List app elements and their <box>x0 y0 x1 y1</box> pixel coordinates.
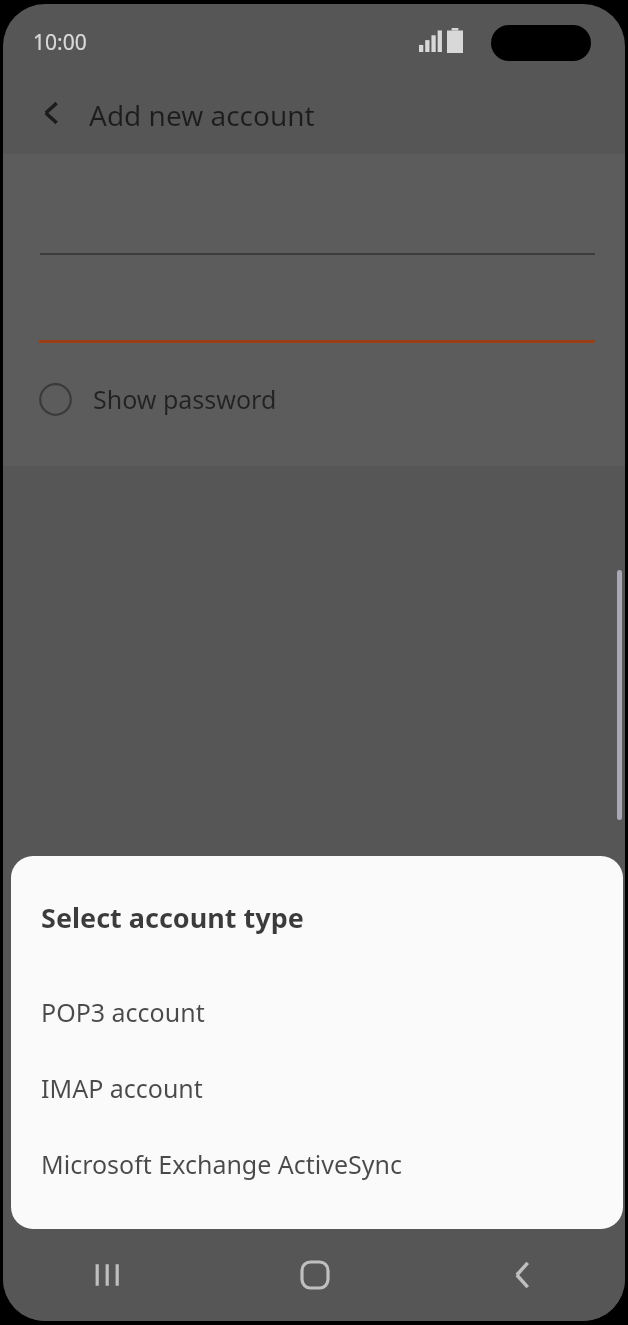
button[interactable]: Back <box>21 82 83 144</box>
button[interactable]: Home <box>211 1229 418 1321</box>
button[interactable]: Microsoft Exchange ActiveSync <box>11 1134 623 1194</box>
staticText: Show password <box>93 382 277 416</box>
button[interactable] <box>40 164 595 256</box>
button[interactable]: IMAP account <box>11 1058 623 1118</box>
button[interactable]: Back <box>418 1229 625 1321</box>
staticText: Add new account <box>89 96 315 134</box>
button[interactable]: Recent apps <box>3 1229 211 1321</box>
staticText: Select account type <box>41 899 304 936</box>
staticText: 10:00 <box>33 28 87 57</box>
button[interactable]: Show password <box>21 368 277 430</box>
staticText: Microsoft Exchange ActiveSync <box>41 1147 403 1181</box>
staticText: POP3 account <box>41 995 205 1029</box>
staticText: IMAP account <box>41 1071 203 1105</box>
button[interactable]: POP3 account <box>11 982 623 1042</box>
